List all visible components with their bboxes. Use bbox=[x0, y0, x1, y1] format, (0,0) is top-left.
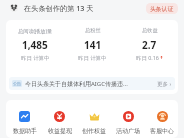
button[interactable]: 活动广场 bbox=[111, 111, 145, 135]
staticText: 数据助手 bbox=[13, 127, 37, 135]
staticText: 总粉丝 bbox=[85, 27, 101, 34]
staticText: 总收益 bbox=[142, 27, 158, 34]
staticText: 总阅读(播放)量 bbox=[18, 27, 53, 34]
staticText: 昨日 计算中 bbox=[78, 54, 107, 61]
staticText: 创作权益 bbox=[82, 127, 106, 135]
button[interactable]: 收益提现 bbox=[42, 111, 77, 135]
staticText: 收益提现 bbox=[48, 127, 72, 135]
staticText: 活动广场 bbox=[116, 127, 140, 135]
staticText: 2.7 bbox=[142, 38, 157, 52]
button[interactable]: 创作权益 bbox=[77, 111, 111, 135]
staticText: 昨日 计算中 bbox=[21, 54, 50, 61]
button[interactable]: 客服中心 bbox=[145, 111, 178, 135]
staticText: 141 bbox=[84, 38, 102, 52]
staticText: 公告 bbox=[13, 81, 21, 86]
staticText: 今日头条关于自媒体利用AIGC传播违... bbox=[25, 80, 128, 88]
button[interactable]: 头条认证 bbox=[146, 3, 178, 14]
button[interactable]: 数据助手 bbox=[7, 111, 42, 135]
staticText: 更多 › bbox=[157, 80, 172, 88]
staticText: 在头条创作的第 13 天 bbox=[24, 3, 94, 13]
staticText: 昨日 0.16 bbox=[136, 54, 159, 61]
button[interactable]: 公告 bbox=[9, 77, 175, 90]
staticText: 头条认证 bbox=[150, 5, 174, 12]
staticText: 客服中心 bbox=[150, 127, 174, 135]
staticText: 1,485 bbox=[22, 38, 48, 52]
button[interactable]: Profile avatar bbox=[10, 4, 18, 12]
